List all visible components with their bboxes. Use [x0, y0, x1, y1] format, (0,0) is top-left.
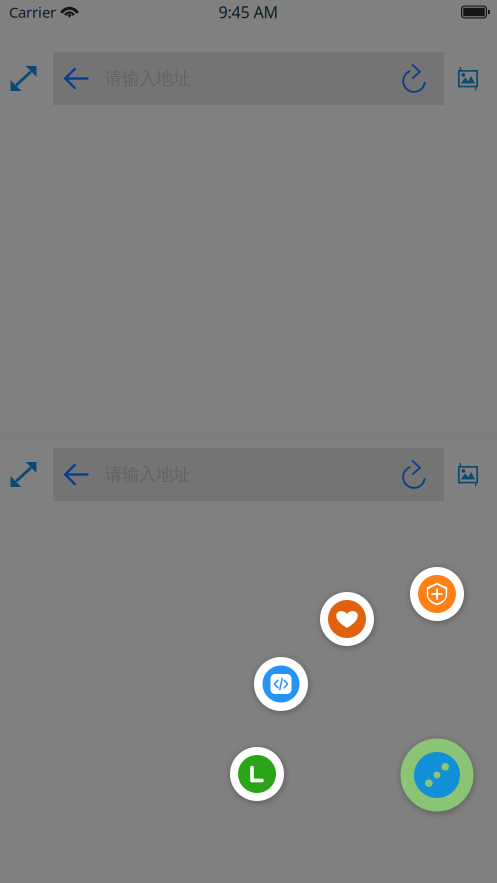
staticText: 请输入地址	[105, 68, 190, 89]
button[interactable]: Photo library	[444, 448, 497, 501]
button[interactable]: View source	[254, 657, 308, 711]
button[interactable]: More tools	[400, 738, 473, 811]
button[interactable]: Reload	[386, 448, 444, 501]
button[interactable]: History	[230, 747, 284, 801]
staticText: Carrier	[9, 2, 56, 22]
staticText: 9:45 AM	[218, 1, 278, 23]
button[interactable]: Toggle full screen	[0, 52, 53, 105]
button[interactable]: Toggle full screen	[0, 448, 53, 501]
button[interactable]: Back	[53, 52, 105, 105]
staticText: 请输入地址	[105, 464, 190, 485]
button[interactable]: Photo library	[444, 52, 497, 105]
button[interactable]: Favourites	[320, 592, 374, 646]
button[interactable]: Back	[53, 448, 105, 501]
button[interactable]: Reload	[386, 52, 444, 105]
button[interactable]: Security	[410, 567, 464, 621]
